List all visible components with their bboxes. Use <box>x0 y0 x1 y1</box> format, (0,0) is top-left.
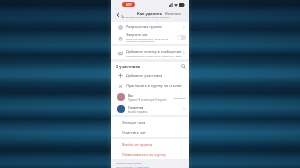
staticText: Очистить чат <box>122 130 146 135</box>
staticText: Добавить кнопку в сообщения <box>126 49 182 54</box>
staticText: Экспорт чата <box>122 120 146 125</box>
button[interactable]: Разрешения группы <box>111 22 189 31</box>
button[interactable]: Пожаловаться на группу <box>111 149 189 159</box>
button[interactable]: Добавить участника <box>111 70 189 80</box>
button[interactable]: Изменить <box>165 11 182 16</box>
staticText: Как удалить <box>137 11 163 16</box>
button[interactable]: Вы <box>111 91 189 103</box>
button[interactable]: Пригласить в группу по ссылке <box>111 80 189 91</box>
staticText: Разрешения группы <box>126 24 182 29</box>
staticText: был(а) недавно <box>128 110 148 114</box>
staticText: Вы <box>128 93 134 98</box>
button[interactable]: Выйти из группы <box>111 139 189 149</box>
staticText: Последняя активность в сети недавно <box>125 15 170 18</box>
staticText: 14 мая 2023 <box>135 165 149 168</box>
staticText: Включите возможность, если хотите запрет… <box>126 37 175 43</box>
staticText: Привет! Я использую Telegram <box>128 98 167 102</box>
staticText: Сименка <box>128 105 144 110</box>
staticText: Пригласить в группу по ссылке <box>126 83 182 88</box>
button[interactable]: Search <box>180 63 186 69</box>
staticText: Пожаловаться на группу <box>122 152 166 157</box>
staticText: владелец <box>174 96 186 99</box>
button[interactable]: Закрыть чат <box>111 31 189 44</box>
staticText: Дата создания: <box>116 165 135 168</box>
button[interactable]: Очистить чат <box>111 127 189 137</box>
staticText: 0:07 <box>126 3 132 7</box>
staticText: Группа создана давно <box>116 161 142 164</box>
button[interactable]: Добавить кнопку в сообщения <box>111 46 189 59</box>
staticText: Закрыть чат <box>126 32 148 37</box>
staticText: Пользователи в группе смогут связаться с… <box>126 54 182 57</box>
staticText: 2 участника <box>116 64 180 69</box>
staticText: Изменить <box>165 11 182 16</box>
button[interactable]: Экспорт чата <box>111 117 189 127</box>
button[interactable]: Back <box>114 11 122 19</box>
staticText: Выйти из группы <box>122 142 153 147</box>
button[interactable]: Сименка <box>111 103 189 115</box>
staticText: Добавить участника <box>126 73 163 78</box>
